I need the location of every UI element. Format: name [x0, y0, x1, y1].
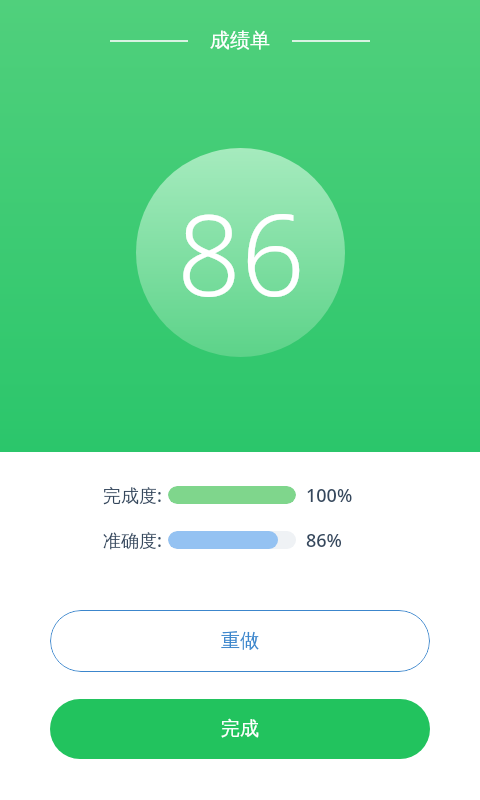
staticText: 重做 — [221, 629, 259, 653]
button[interactable]: 完成 — [50, 699, 430, 759]
staticText: 86% — [306, 528, 342, 553]
staticText: 完成度: — [103, 483, 162, 508]
staticText: 准确度: — [103, 528, 162, 553]
staticText: 完成 — [221, 717, 259, 741]
staticText: 成绩单 — [210, 28, 270, 53]
button[interactable]: 重做 — [50, 610, 430, 672]
staticText: 86 — [177, 176, 305, 329]
staticText: 100% — [306, 483, 353, 508]
